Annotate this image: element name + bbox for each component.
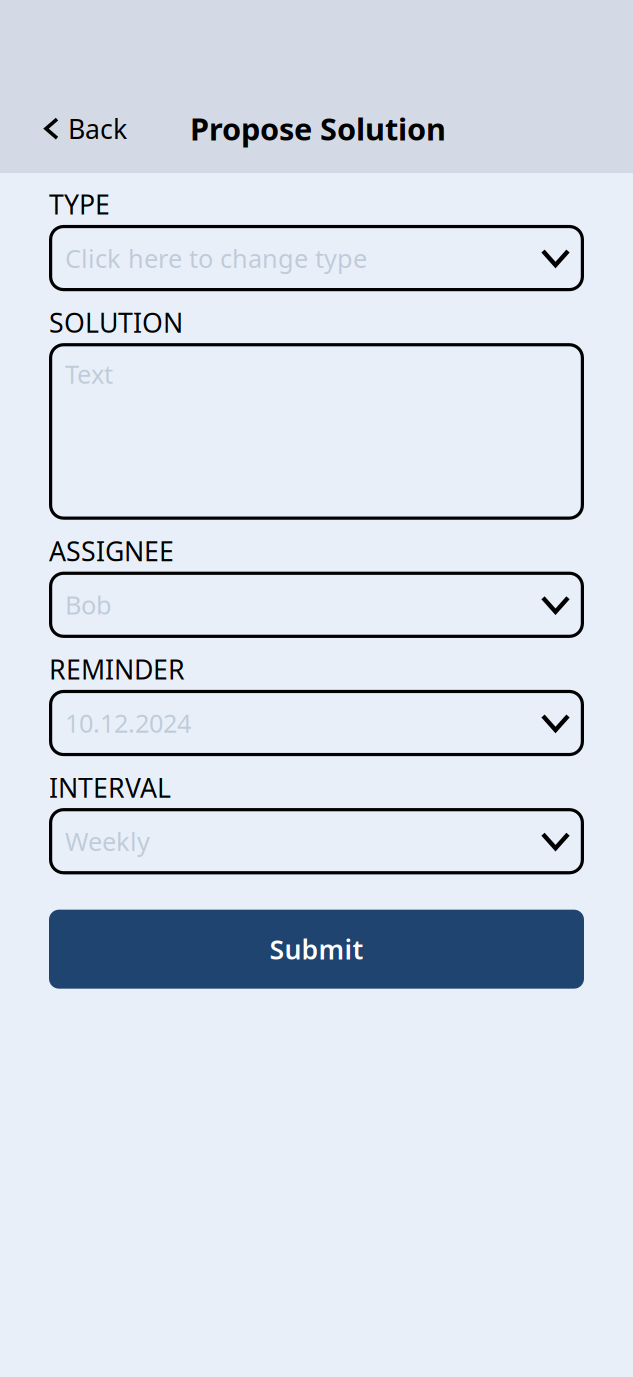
staticText: REMINDER — [49, 651, 185, 687]
button[interactable]: Text — [49, 343, 584, 520]
staticText: INTERVAL — [49, 770, 171, 805]
staticText: Propose Solution — [190, 108, 446, 149]
button[interactable]: Submit — [49, 910, 584, 989]
button[interactable]: Click here to change type — [49, 225, 584, 291]
staticText: Submit — [269, 931, 363, 967]
button[interactable]: Weekly — [49, 808, 584, 874]
staticText: ASSIGNEE — [49, 533, 174, 569]
staticText: Bob — [65, 588, 112, 622]
staticText: Back — [68, 111, 127, 146]
button[interactable]: Back — [46, 111, 190, 146]
staticText: TYPE — [49, 186, 110, 222]
button[interactable]: 10.12.2024 — [49, 690, 584, 756]
staticText: Text — [65, 357, 113, 391]
staticText: 10.12.2024 — [65, 706, 191, 740]
staticText: Click here to change type — [65, 241, 367, 275]
staticText: SOLUTION — [49, 305, 183, 340]
button[interactable]: Bob — [49, 572, 584, 638]
staticText: Weekly — [65, 824, 150, 858]
